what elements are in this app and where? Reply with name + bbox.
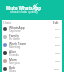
button[interactable]: Mom — [0, 57, 64, 65]
button[interactable]: Alice — [0, 49, 64, 57]
staticText: Hi there — [9, 37, 20, 41]
staticText: See you — [9, 61, 20, 65]
button[interactable]: Family — [0, 33, 64, 41]
staticText: Family — [9, 34, 19, 38]
staticText: WhatsApp — [9, 26, 25, 30]
staticText: Yest — [55, 59, 60, 62]
staticText: Edit — [53, 21, 59, 25]
staticText: 8:30 — [55, 43, 60, 46]
staticText: Work Team — [9, 42, 27, 46]
staticText: 9:12 — [55, 35, 60, 38]
staticText: Meeting — [9, 45, 21, 49]
staticText: 9:41 — [55, 27, 60, 30]
staticText: Bob — [9, 66, 16, 70]
staticText: about chats quietly — [10, 10, 38, 14]
staticText: Tap here — [9, 29, 21, 33]
staticText: Mon — [54, 67, 60, 70]
staticText: Mom — [9, 58, 17, 62]
button[interactable]: Bob — [0, 65, 64, 72]
staticText: Mute WhatsApp — [6, 5, 42, 11]
staticText: Okay — [9, 69, 16, 72]
button[interactable]: WhatsApp — [0, 25, 64, 33]
button[interactable]: Mute notifications — [32, 3, 38, 9]
button[interactable]: Work Team — [0, 41, 64, 49]
staticText: Yest — [55, 51, 60, 54]
staticText: Thanks — [9, 53, 19, 57]
staticText: Alice — [9, 50, 17, 54]
staticText: Chats — [3, 21, 11, 25]
